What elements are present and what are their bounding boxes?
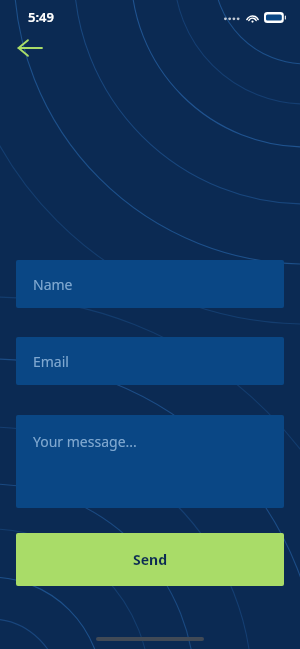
staticText: Send: [133, 550, 168, 569]
button[interactable]: Back: [10, 28, 50, 68]
button[interactable]: Your message...: [16, 415, 284, 508]
staticText: Email: [33, 352, 69, 371]
staticText: 5:49: [28, 8, 54, 26]
staticText: Name: [33, 275, 73, 294]
staticText: Your message...: [33, 432, 137, 451]
button[interactable]: Email: [16, 337, 284, 385]
button[interactable]: Name: [16, 260, 284, 308]
button[interactable]: Send: [16, 533, 284, 586]
